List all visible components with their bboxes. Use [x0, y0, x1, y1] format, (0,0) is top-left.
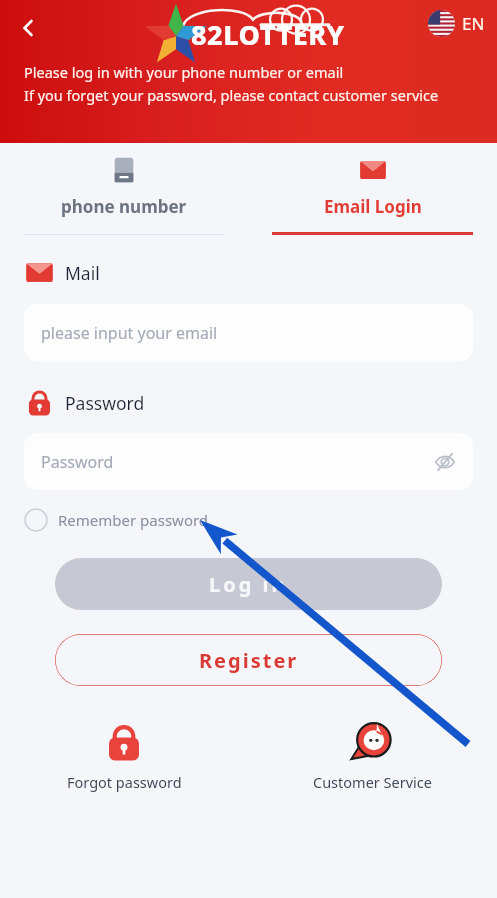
- staticText: Remember password: [58, 510, 209, 530]
- staticText: 82LOTTERY: [191, 16, 345, 53]
- staticText: Log in: [209, 571, 288, 598]
- button[interactable]: Email Login: [248, 143, 497, 235]
- button[interactable]: phone number: [0, 143, 248, 235]
- staticText: Please log in with your phone number or …: [24, 62, 344, 82]
- button[interactable]: Forgot password: [0, 716, 248, 796]
- staticText: Password: [65, 391, 145, 415]
- staticText: please input your email: [41, 322, 218, 344]
- staticText: Customer Service: [313, 772, 432, 792]
- button[interactable]: Remember password: [24, 508, 209, 532]
- button[interactable]: EN: [428, 10, 485, 37]
- button[interactable]: Password: [24, 433, 473, 490]
- button[interactable]: Customer Service: [248, 716, 497, 796]
- button[interactable]: Show password: [431, 448, 459, 476]
- staticText: Password: [41, 451, 114, 473]
- button[interactable]: Log in: [55, 558, 442, 610]
- staticText: Email Login: [324, 195, 422, 218]
- button[interactable]: Back: [6, 6, 50, 50]
- staticText: EN: [462, 12, 485, 35]
- staticText: Forgot password: [67, 772, 182, 792]
- staticText: phone number: [61, 195, 187, 218]
- staticText: Register: [199, 647, 299, 674]
- staticText: If you forget your password, please cont…: [24, 85, 439, 105]
- button[interactable]: please input your email: [24, 304, 473, 361]
- staticText: Mail: [65, 261, 100, 285]
- button[interactable]: Register: [55, 634, 442, 686]
